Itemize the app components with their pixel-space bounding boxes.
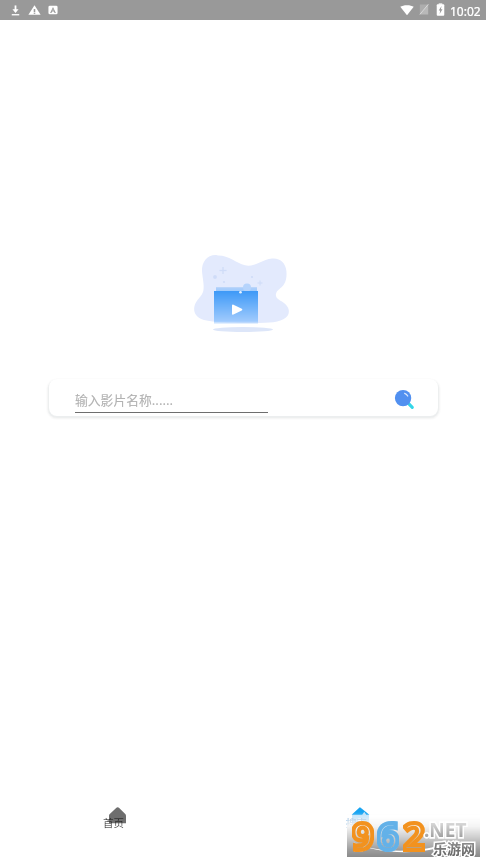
staticText: 乐游网 [433, 838, 475, 858]
staticText: 输入影片名称...... [75, 390, 174, 409]
staticText: 10:02 [450, 3, 481, 19]
staticText: 2 [403, 809, 425, 854]
staticText: .NET [424, 817, 467, 843]
staticText: 乐游网 [433, 838, 475, 858]
staticText: 6 [377, 809, 399, 854]
staticText: 搜索 [346, 815, 367, 830]
button[interactable]: 首页 [0, 804, 243, 830]
staticText: 9 [352, 809, 374, 854]
staticText: 6 [377, 809, 399, 854]
staticText: 2 [403, 809, 425, 854]
button[interactable]: Search [385, 382, 415, 412]
button[interactable]: 输入影片名称...... [49, 379, 438, 416]
staticText: 首页 [103, 815, 124, 830]
button[interactable]: 搜索 [243, 804, 486, 830]
staticText: 9 [352, 809, 374, 854]
staticText: .NET [424, 817, 467, 843]
